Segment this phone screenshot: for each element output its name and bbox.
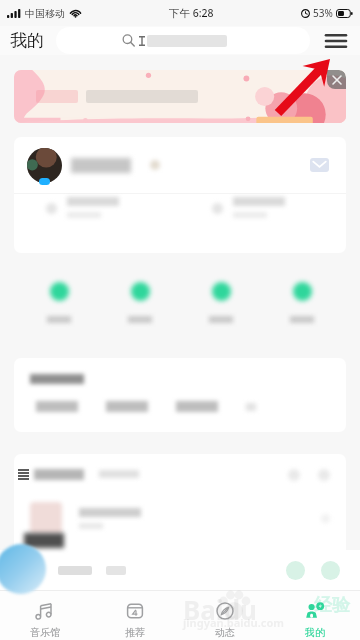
button[interactable] — [56, 27, 310, 54]
button[interactable]: Messages — [306, 152, 332, 178]
staticText: 下午 6:28 — [169, 6, 214, 20]
staticText: 动态 — [215, 626, 235, 639]
button[interactable] — [99, 278, 180, 325]
button[interactable] — [261, 278, 342, 325]
button[interactable]: Close banner — [327, 70, 346, 89]
button[interactable] — [180, 278, 261, 325]
button[interactable] — [18, 278, 99, 325]
staticText: 经验 — [314, 594, 350, 617]
button[interactable] — [180, 194, 346, 221]
staticText: 中国移动 — [25, 7, 65, 20]
staticText: 我的 — [305, 626, 325, 639]
button[interactable] — [103, 398, 151, 415]
staticText: 推荐 — [125, 626, 145, 639]
button[interactable]: 推荐 — [90, 593, 180, 639]
button[interactable]: Menu — [323, 28, 349, 54]
staticText: 53% — [313, 6, 333, 20]
button[interactable]: More — [314, 465, 333, 484]
button[interactable]: 动态 — [180, 593, 270, 639]
button[interactable]: Playlist — [321, 561, 340, 580]
button[interactable] — [14, 194, 180, 221]
button[interactable]: 我的 — [270, 593, 360, 639]
button[interactable]: Sort — [14, 454, 346, 494]
button[interactable] — [33, 398, 81, 415]
staticText: Baidu — [183, 592, 257, 627]
button[interactable] — [14, 494, 346, 542]
button[interactable]: Sort — [284, 465, 303, 484]
button[interactable]: Messages — [14, 137, 346, 193]
button[interactable]: Play — [286, 561, 305, 580]
button[interactable]: 音乐馆 — [0, 593, 90, 639]
button[interactable] — [173, 398, 221, 415]
staticText: 我的 — [10, 30, 44, 51]
staticText: jingyan.baidu.com — [183, 615, 285, 630]
staticText: 音乐馆 — [30, 626, 60, 639]
button[interactable]: Close banner — [14, 70, 346, 123]
button[interactable]: Now playing — [0, 544, 46, 594]
